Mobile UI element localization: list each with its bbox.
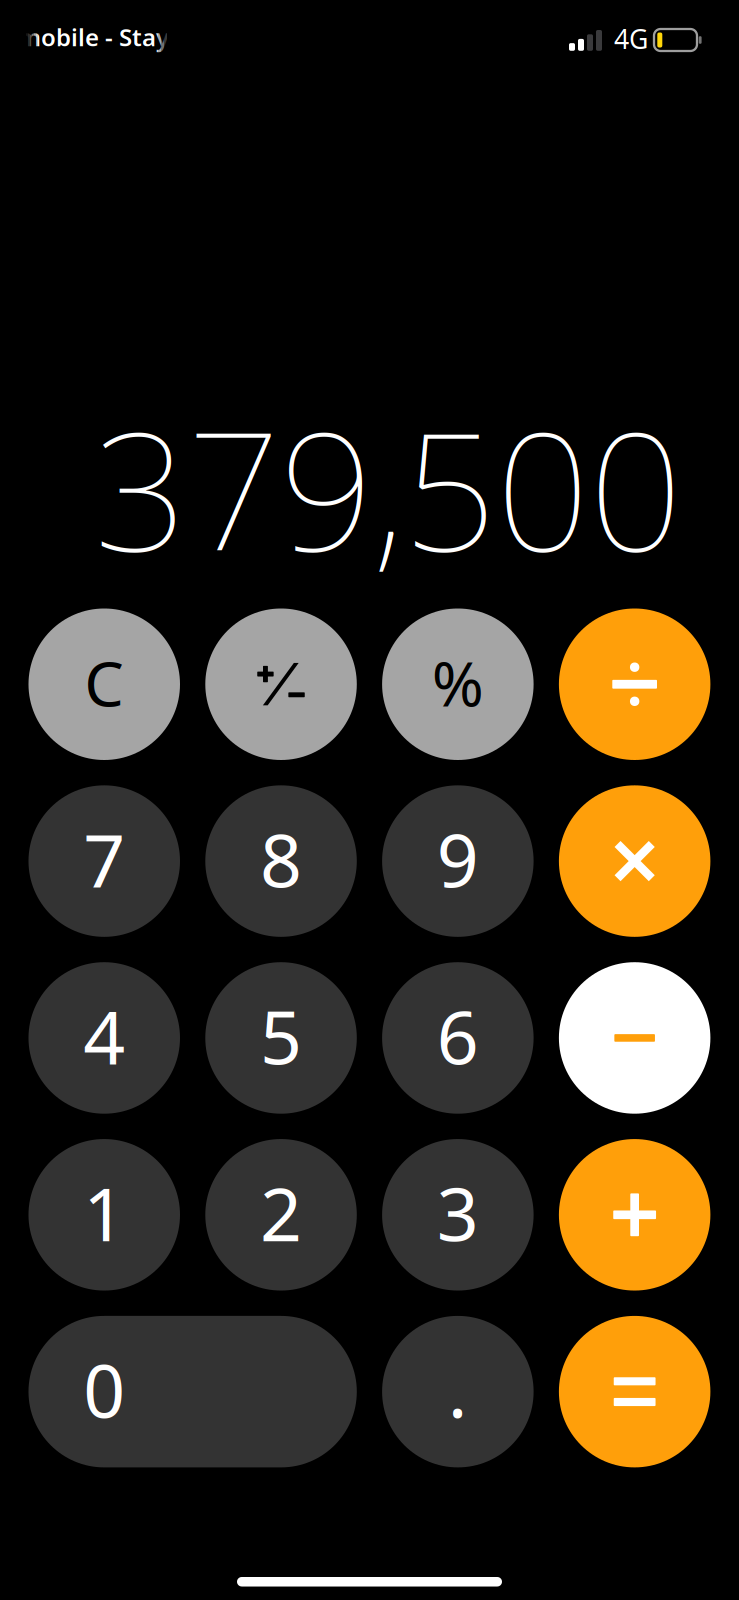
button[interactable]: Percent (382, 608, 534, 760)
button[interactable]: Eight (205, 785, 357, 937)
button[interactable]: One (28, 1139, 180, 1290)
button[interactable]: Equals (559, 1316, 710, 1467)
button[interactable]: Plus minus (205, 608, 357, 760)
staticText: 0 (83, 1341, 125, 1438)
button[interactable]: Two (205, 1139, 357, 1290)
button[interactable]: Subtract (559, 962, 710, 1114)
button[interactable]: Multiply (559, 785, 710, 937)
button[interactable]: Zero (28, 1316, 357, 1467)
button[interactable]: Six (382, 962, 534, 1114)
button[interactable]: Seven (28, 785, 180, 937)
staticText: 1 (83, 1164, 125, 1261)
staticText: 3 (437, 1164, 479, 1261)
staticText: 8 (260, 810, 302, 908)
staticText: % (432, 641, 484, 724)
staticText: 2 (260, 1164, 302, 1261)
staticText: C (84, 641, 124, 724)
staticText: 6 (437, 987, 479, 1085)
button[interactable]: Three (382, 1139, 534, 1290)
button[interactable]: Divide (559, 608, 710, 760)
button[interactable]: Add (559, 1139, 710, 1290)
staticText: 9 (437, 810, 479, 908)
staticText: 5 (260, 987, 302, 1085)
button[interactable]: Nine (382, 785, 534, 937)
staticText: 379,500 (94, 378, 682, 596)
staticText: 4G (614, 21, 648, 56)
button[interactable]: Four (28, 962, 180, 1114)
staticText: mobile - Stay (18, 21, 169, 53)
staticText: . (448, 1341, 468, 1438)
staticText: 4 (83, 987, 125, 1085)
button[interactable]: Five (205, 962, 357, 1114)
staticText: 7 (83, 810, 125, 908)
button[interactable]: Decimal point (382, 1316, 534, 1467)
button[interactable]: Clear (28, 608, 180, 760)
